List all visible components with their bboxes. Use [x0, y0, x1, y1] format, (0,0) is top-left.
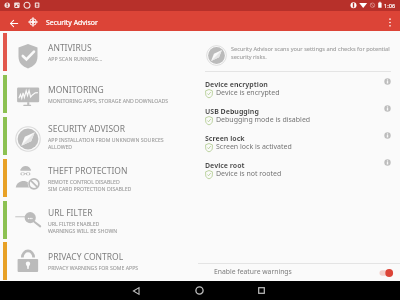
staticText: Device root: [205, 161, 245, 171]
button[interactable]: Back: [113, 281, 159, 300]
button[interactable]: SECURITY ADVISOR: [0, 115, 198, 157]
staticText: Debugging mode is disabled: [216, 115, 311, 125]
staticText: Device is encrypted: [216, 88, 280, 98]
staticText: Enable feature warnings: [214, 267, 292, 276]
staticText: Security Advisor scans your settings and…: [231, 45, 396, 61]
button[interactable]: PRIVACY CONTROL: [0, 241, 198, 281]
staticText: APP INSTALLATION FROM UNKNOWN SOURCES: [48, 136, 164, 143]
button[interactable]: USB Debugging: [198, 102, 400, 129]
staticText: MONITORING APPS, STORAGE AND DOWNLOADS: [48, 97, 169, 104]
staticText: THEFT PROTECTION: [48, 165, 128, 177]
button[interactable]: Info: [384, 105, 391, 112]
button[interactable]: Home: [176, 281, 222, 300]
staticText: WARNINGS WILL BE SHOWN: [48, 227, 118, 234]
button[interactable]: Back: [0, 11, 23, 31]
staticText: APP SCAN RUNNING...: [48, 55, 103, 62]
button[interactable]: Device encryption: [198, 75, 400, 102]
staticText: ANTIVIRUS: [48, 42, 92, 54]
staticText: Device is not rooted: [216, 169, 282, 179]
staticText: MONITORING: [48, 84, 104, 96]
staticText: URL FILTER ENABLED: [48, 220, 100, 227]
staticText: Security Advisor: [46, 18, 98, 27]
button[interactable]: ANTIVIRUS: [0, 31, 198, 73]
button[interactable]: Info: [384, 159, 391, 166]
staticText: REMOTE CONTROL DISABLED: [48, 178, 120, 185]
button[interactable]: URL FILTER: [0, 199, 198, 241]
staticText: 1:06: [384, 2, 396, 10]
staticText: Screen lock: [205, 134, 245, 144]
staticText: SIM CARD PROTECTION DISABLED: [48, 185, 132, 192]
staticText: ALLOWED: [48, 143, 73, 150]
staticText: URL FILTER: [48, 207, 93, 219]
button[interactable]: Info: [384, 78, 391, 85]
button[interactable]: THEFT PROTECTION: [0, 157, 198, 199]
button[interactable]: Device root: [198, 156, 400, 183]
button[interactable]: Screen lock: [198, 129, 400, 156]
staticText: SECURITY ADVISOR: [48, 123, 126, 135]
staticText: PRIVACY CONTROL: [48, 251, 124, 263]
button[interactable]: More options: [380, 11, 400, 31]
button[interactable]: Enable feature warnings: [198, 264, 400, 281]
staticText: Screen lock is activated: [216, 142, 292, 152]
button[interactable]: Info: [384, 132, 391, 139]
staticText: Device encryption: [205, 80, 268, 90]
staticText: USB Debugging: [205, 107, 259, 117]
button[interactable]: Recent apps: [238, 281, 284, 300]
staticText: PRIVACY WARNINGS FOR SOME APPS: [48, 264, 139, 271]
button[interactable]: MONITORING: [0, 73, 198, 115]
